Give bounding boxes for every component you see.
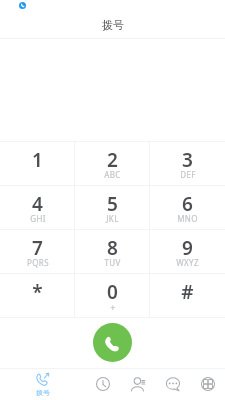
staticText: 3 (182, 147, 193, 173)
staticText: GHI (30, 213, 46, 224)
staticText: 6 (182, 191, 193, 217)
button[interactable]: Messages (155, 369, 190, 400)
button[interactable]: Recents (86, 369, 120, 400)
button[interactable]: 5 (75, 186, 150, 230)
staticText: JKL (106, 213, 119, 224)
button[interactable]: * (0, 274, 75, 318)
button[interactable]: More apps (190, 369, 225, 400)
staticText: 0 (107, 279, 118, 305)
staticText: DEF (180, 169, 196, 180)
staticText: 拨号 (102, 18, 124, 32)
button[interactable]: # (150, 274, 225, 318)
button[interactable]: 1 (0, 142, 75, 186)
staticText: 5 (107, 191, 118, 217)
staticText: TUV (104, 257, 121, 268)
button[interactable]: 2 (75, 142, 150, 186)
button[interactable]: 拨号 (0, 369, 86, 400)
button[interactable]: Contacts (120, 369, 155, 400)
button[interactable]: 4 (0, 186, 75, 230)
button[interactable]: 9 (150, 230, 225, 274)
staticText: 7 (32, 235, 43, 261)
button[interactable]: 8 (75, 230, 150, 274)
staticText: # (181, 279, 194, 305)
button[interactable]: 7 (0, 230, 75, 274)
staticText: 9 (182, 235, 193, 261)
staticText: ABC (104, 169, 121, 180)
button[interactable]: 6 (150, 186, 225, 230)
staticText: 2 (107, 147, 118, 173)
staticText: WXYZ (176, 257, 199, 268)
staticText: + (110, 301, 116, 313)
button[interactable]: 3 (150, 142, 225, 186)
staticText: 拨号 (36, 388, 50, 397)
button[interactable]: 0 (75, 274, 150, 318)
button[interactable]: Call (93, 323, 132, 362)
staticText: 8 (107, 235, 118, 261)
staticText: * (32, 279, 43, 305)
staticText: 1 (32, 147, 43, 173)
staticText: MNO (177, 213, 198, 224)
staticText: 4 (32, 191, 43, 217)
staticText: PQRS (27, 257, 49, 268)
